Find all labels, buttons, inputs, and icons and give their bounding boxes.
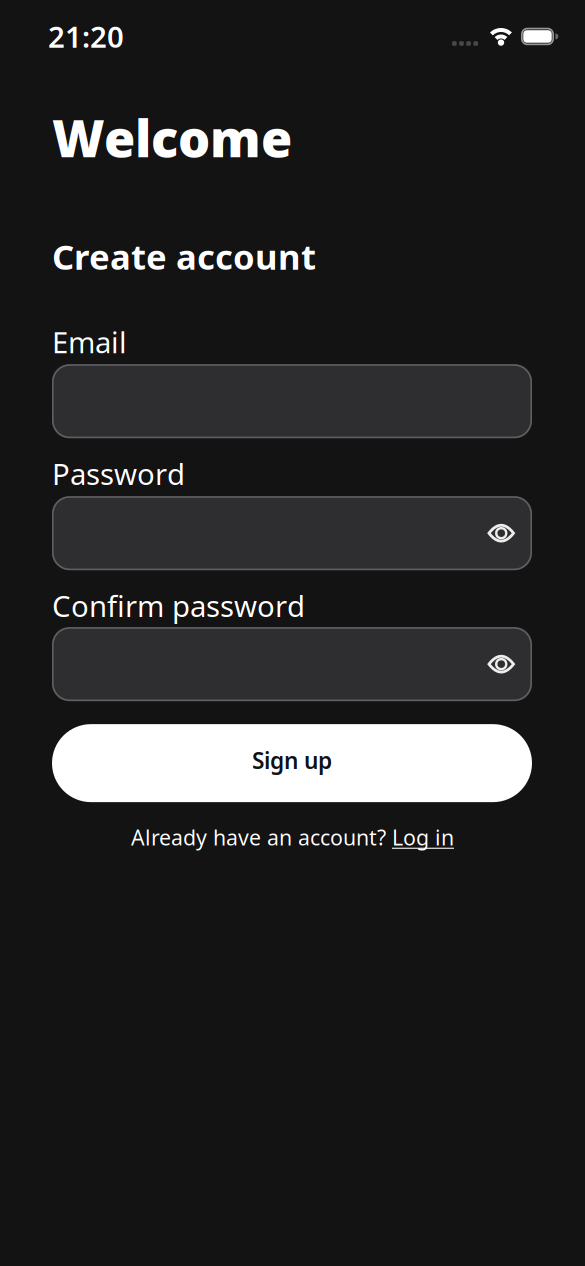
button[interactable]: Log in bbox=[392, 823, 454, 851]
button[interactable]: Show password bbox=[487, 523, 532, 543]
staticText: Welcome bbox=[52, 104, 292, 171]
button[interactable]: Show password bbox=[487, 654, 532, 674]
staticText: 21:20 bbox=[48, 17, 124, 56]
staticText: Confirm password bbox=[52, 586, 305, 625]
staticText: Sign up bbox=[252, 745, 332, 775]
staticText: Already have an account? bbox=[131, 823, 392, 851]
staticText: Create account bbox=[52, 233, 316, 279]
staticText: Log in bbox=[392, 823, 454, 851]
staticText: Password bbox=[52, 454, 185, 493]
staticText: Email bbox=[52, 322, 127, 361]
button[interactable]: Sign up bbox=[52, 724, 532, 802]
